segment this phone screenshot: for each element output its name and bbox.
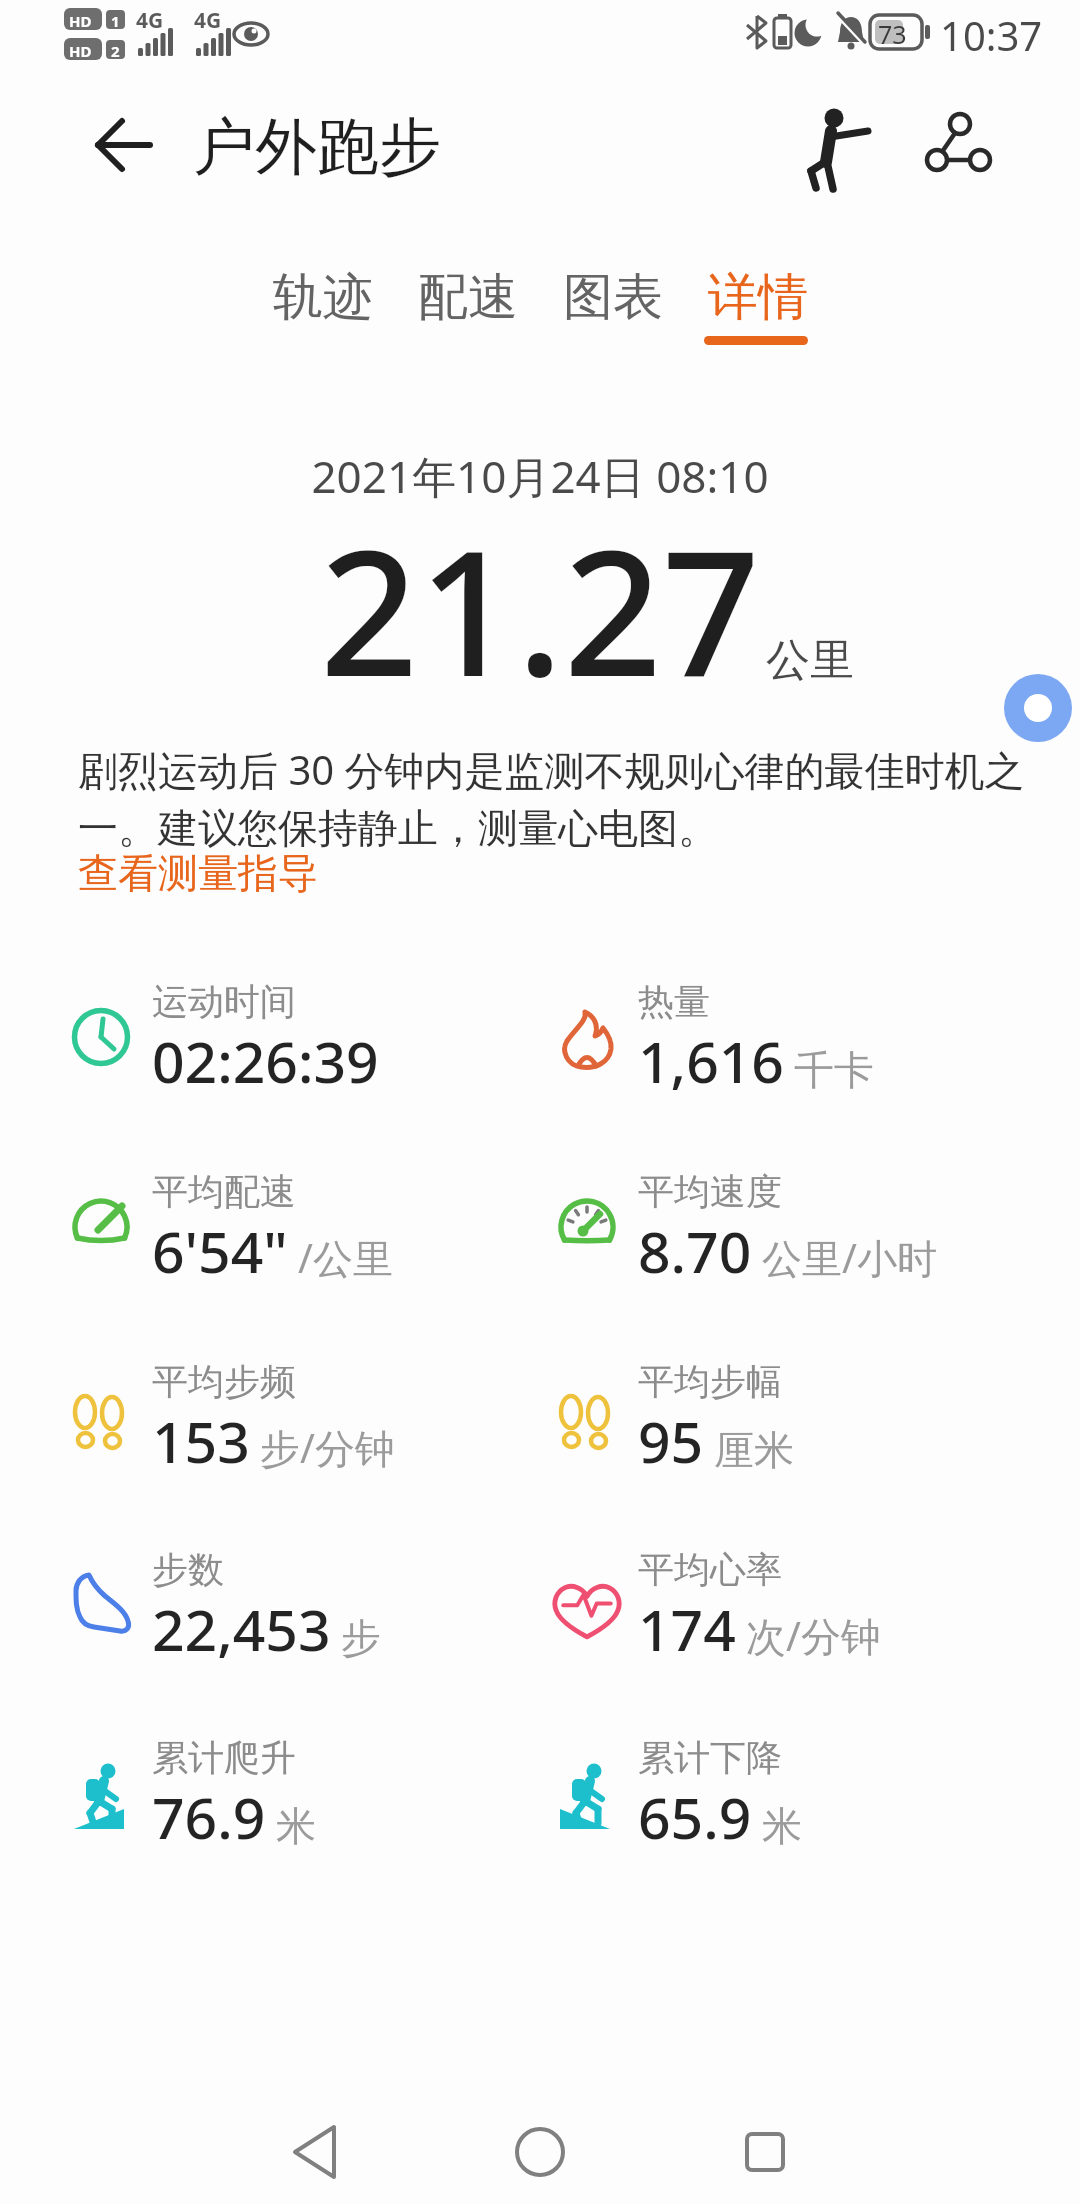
staticText: 图表: [563, 266, 663, 329]
staticText: 详情: [708, 266, 808, 329]
button[interactable]: [465, 2104, 615, 2200]
staticText: HD: [69, 41, 92, 61]
button[interactable]: 平均心率: [638, 1547, 782, 1592]
staticText: 21.27: [0, 492, 1080, 726]
staticText: 2: [111, 41, 120, 61]
staticText: 4G: [194, 6, 222, 35]
staticText: 4G: [136, 6, 164, 35]
staticText: 02:26:39: [152, 1022, 379, 1100]
staticText: 174: [638, 1590, 736, 1668]
button[interactable]: 运动时间: [152, 979, 296, 1024]
button[interactable]: 查看测量指导: [78, 848, 318, 898]
button[interactable]: [690, 2104, 840, 2200]
staticText: 千卡: [794, 1045, 874, 1095]
button[interactable]: 热量: [638, 979, 710, 1024]
staticText: 73: [878, 17, 907, 51]
staticText: 1: [111, 11, 120, 31]
button[interactable]: 轨迹: [250, 266, 395, 329]
button[interactable]: 平均步幅: [638, 1359, 782, 1404]
staticText: 65.9: [638, 1778, 752, 1856]
button[interactable]: 详情: [685, 266, 830, 329]
button[interactable]: 图表: [540, 266, 685, 329]
staticText: 米: [762, 1801, 802, 1851]
staticText: /公里: [298, 1230, 393, 1285]
button[interactable]: [80, 110, 160, 180]
staticText: 10:37: [940, 8, 1043, 62]
staticText: 6'54": [152, 1212, 288, 1290]
staticText: 公里: [766, 633, 854, 688]
staticText: 1,616: [638, 1022, 784, 1100]
staticText: 步/分钟: [260, 1420, 395, 1475]
staticText: 户外跑步: [193, 108, 441, 186]
button[interactable]: 配速: [395, 266, 540, 329]
staticText: 公里/小时: [762, 1230, 937, 1285]
button[interactable]: [1004, 674, 1072, 742]
button[interactable]: 平均步频: [152, 1359, 296, 1404]
staticText: 米: [276, 1801, 316, 1851]
button[interactable]: 平均速度: [638, 1169, 782, 1214]
staticText: 剧烈运动后 30 分钟内是监测不规则心律的最佳时机之 一。建议您保持静止，测量心…: [78, 742, 1068, 853]
staticText: HD: [69, 11, 92, 31]
button[interactable]: [240, 2104, 390, 2200]
button[interactable]: [790, 100, 870, 195]
staticText: 次/分钟: [746, 1608, 881, 1663]
button[interactable]: 累计爬升: [152, 1735, 296, 1780]
staticText: 轨迹: [273, 266, 373, 329]
staticText: 22,453: [152, 1590, 331, 1668]
staticText: 厘米: [714, 1425, 794, 1475]
button[interactable]: 平均配速: [152, 1169, 296, 1214]
staticText: 153: [152, 1402, 250, 1480]
button[interactable]: [915, 95, 1005, 185]
staticText: 配速: [418, 266, 518, 329]
button[interactable]: 步数: [152, 1547, 224, 1592]
staticText: 95: [638, 1402, 704, 1480]
staticText: 8.70: [638, 1212, 752, 1290]
staticText: 2021年10月24日 08:10: [0, 446, 1080, 506]
staticText: 76.9: [152, 1778, 266, 1856]
button[interactable]: 累计下降: [638, 1735, 782, 1780]
staticText: 步: [341, 1613, 381, 1663]
